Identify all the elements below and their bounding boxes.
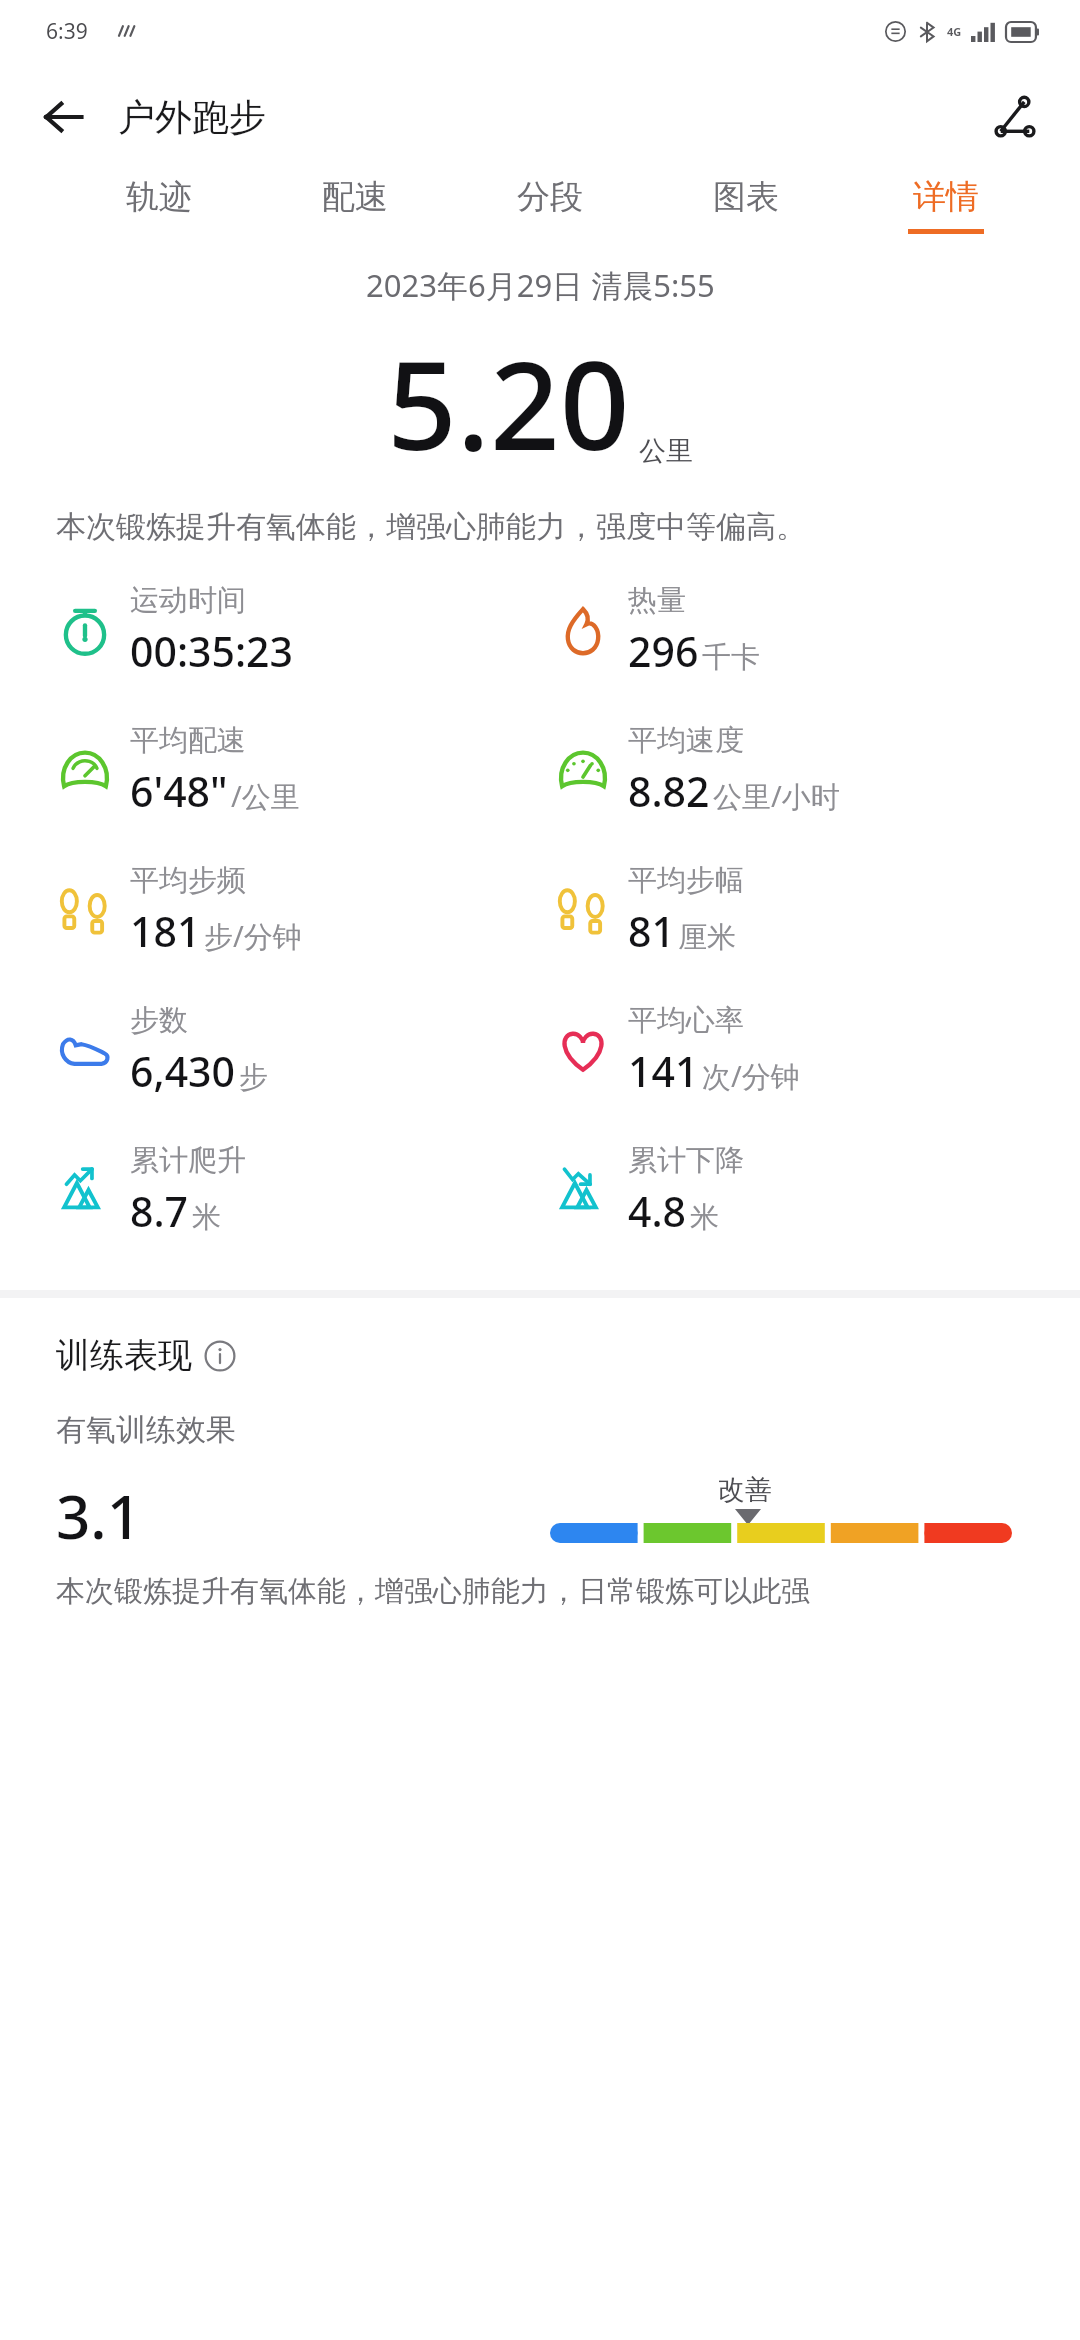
staticText: 户外跑步 [118, 94, 266, 141]
staticText: 公里/小时 [713, 776, 840, 816]
button[interactable]: 累计爬升 [56, 1120, 540, 1260]
staticText: 181 [130, 903, 201, 959]
staticText: 平均配速 [130, 722, 246, 759]
staticText: 改善 [718, 1473, 772, 1507]
staticText: 厘米 [678, 919, 736, 956]
button[interactable]: 轨迹 [120, 172, 198, 238]
staticText: 轨迹 [126, 176, 192, 218]
staticText: 有氧训练效果 [56, 1411, 236, 1449]
other: Info [204, 1340, 236, 1372]
staticText: 本次锻炼提升有氧体能，增强心肺能力，日常锻炼可以此强 [56, 1573, 810, 1610]
staticText: 详情 [913, 176, 979, 218]
staticText: 8.82 [628, 763, 710, 819]
staticText: 运动时间 [130, 582, 246, 619]
button[interactable]: 平均速度 [554, 700, 1080, 840]
button[interactable]: 平均步频 [56, 840, 540, 980]
staticText: 步/分钟 [204, 916, 302, 956]
button[interactable]: 配速 [316, 172, 394, 238]
staticText: 公里 [639, 434, 693, 468]
staticText: 6:39 [46, 17, 88, 46]
staticText: 累计爬升 [130, 1142, 246, 1179]
staticText: 本次锻炼提升有氧体能，增强心肺能力，强度中等偏高。 [56, 508, 1024, 546]
button[interactable]: 累计下降 [554, 1120, 1080, 1260]
button[interactable]: 运动时间 [56, 560, 540, 700]
staticText: 2023年6月29日 清晨5:55 [366, 264, 715, 306]
staticText: 平均步幅 [628, 862, 744, 899]
button[interactable]: 平均心率 [554, 980, 1080, 1120]
button[interactable]: 图表 [707, 172, 785, 238]
staticText: 4.8 [628, 1183, 687, 1239]
staticText: 8.7 [130, 1183, 189, 1239]
staticText: 6'48" [130, 763, 228, 819]
staticText: 平均步频 [130, 862, 246, 899]
staticText: 热量 [628, 582, 686, 619]
staticText: 平均速度 [628, 722, 744, 759]
staticText: 米 [192, 1199, 221, 1236]
staticText: 296 [628, 623, 699, 679]
staticText: 累计下降 [628, 1142, 744, 1179]
button[interactable]: 平均步幅 [554, 840, 1080, 980]
button[interactable]: 训练表现 [56, 1334, 236, 1377]
button[interactable]: Share [984, 86, 1046, 148]
staticText: 6,430 [130, 1043, 236, 1099]
staticText: /公里 [231, 776, 300, 816]
staticText: 米 [690, 1199, 719, 1236]
staticText: 千卡 [702, 639, 760, 676]
staticText: 141 [628, 1043, 699, 1099]
button[interactable]: 分段 [511, 172, 589, 238]
staticText: 3.1 [56, 1475, 141, 1557]
staticText: 00:35:23 [130, 623, 294, 679]
button[interactable]: 热量 [554, 560, 1080, 700]
button[interactable]: 详情 [902, 172, 990, 238]
staticText: 4G [947, 24, 962, 39]
button[interactable]: Back [34, 88, 92, 146]
staticText: 步数 [130, 1002, 188, 1039]
staticText: 配速 [322, 176, 388, 218]
staticText: 分段 [517, 176, 583, 218]
staticText: 次/分钟 [702, 1056, 800, 1096]
staticText: 平均心率 [628, 1002, 744, 1039]
button[interactable]: 平均配速 [56, 700, 540, 840]
staticText: 81 [628, 903, 675, 959]
staticText: 训练表现 [56, 1334, 192, 1377]
staticText: 5.20 [387, 320, 630, 486]
staticText: 步 [239, 1059, 268, 1096]
button[interactable]: 步数 [56, 980, 540, 1120]
staticText: 图表 [713, 176, 779, 218]
